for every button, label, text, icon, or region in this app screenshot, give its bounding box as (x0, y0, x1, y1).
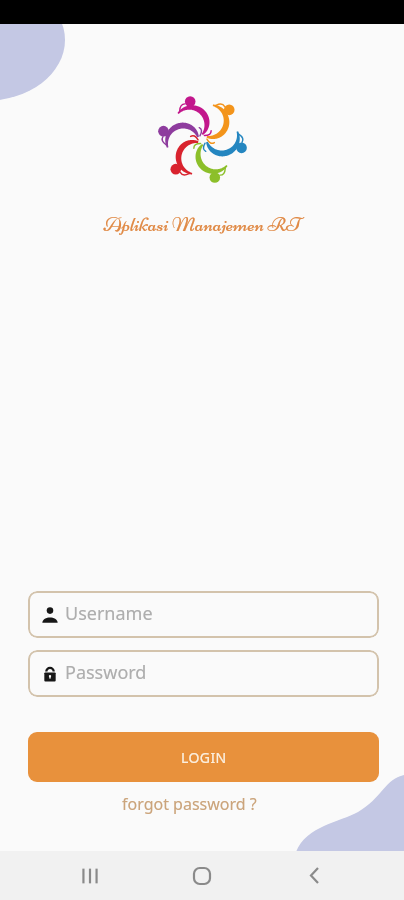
staticText: Username (65, 601, 153, 626)
button[interactable]: Recent apps (57, 851, 122, 900)
staticText: Password (65, 660, 147, 685)
staticText: forgot password ? (122, 793, 257, 815)
button[interactable]: Back (282, 851, 347, 900)
staticText: LOGIN (181, 748, 227, 767)
button[interactable]: Home (169, 851, 234, 900)
button[interactable]: forgot password ? (118, 791, 261, 817)
button[interactable]: Username (28, 591, 379, 638)
button[interactable]: Password (28, 650, 379, 697)
staticText: Aplikasi Manajemen RT (0, 212, 404, 237)
button[interactable]: LOGIN (28, 732, 379, 782)
